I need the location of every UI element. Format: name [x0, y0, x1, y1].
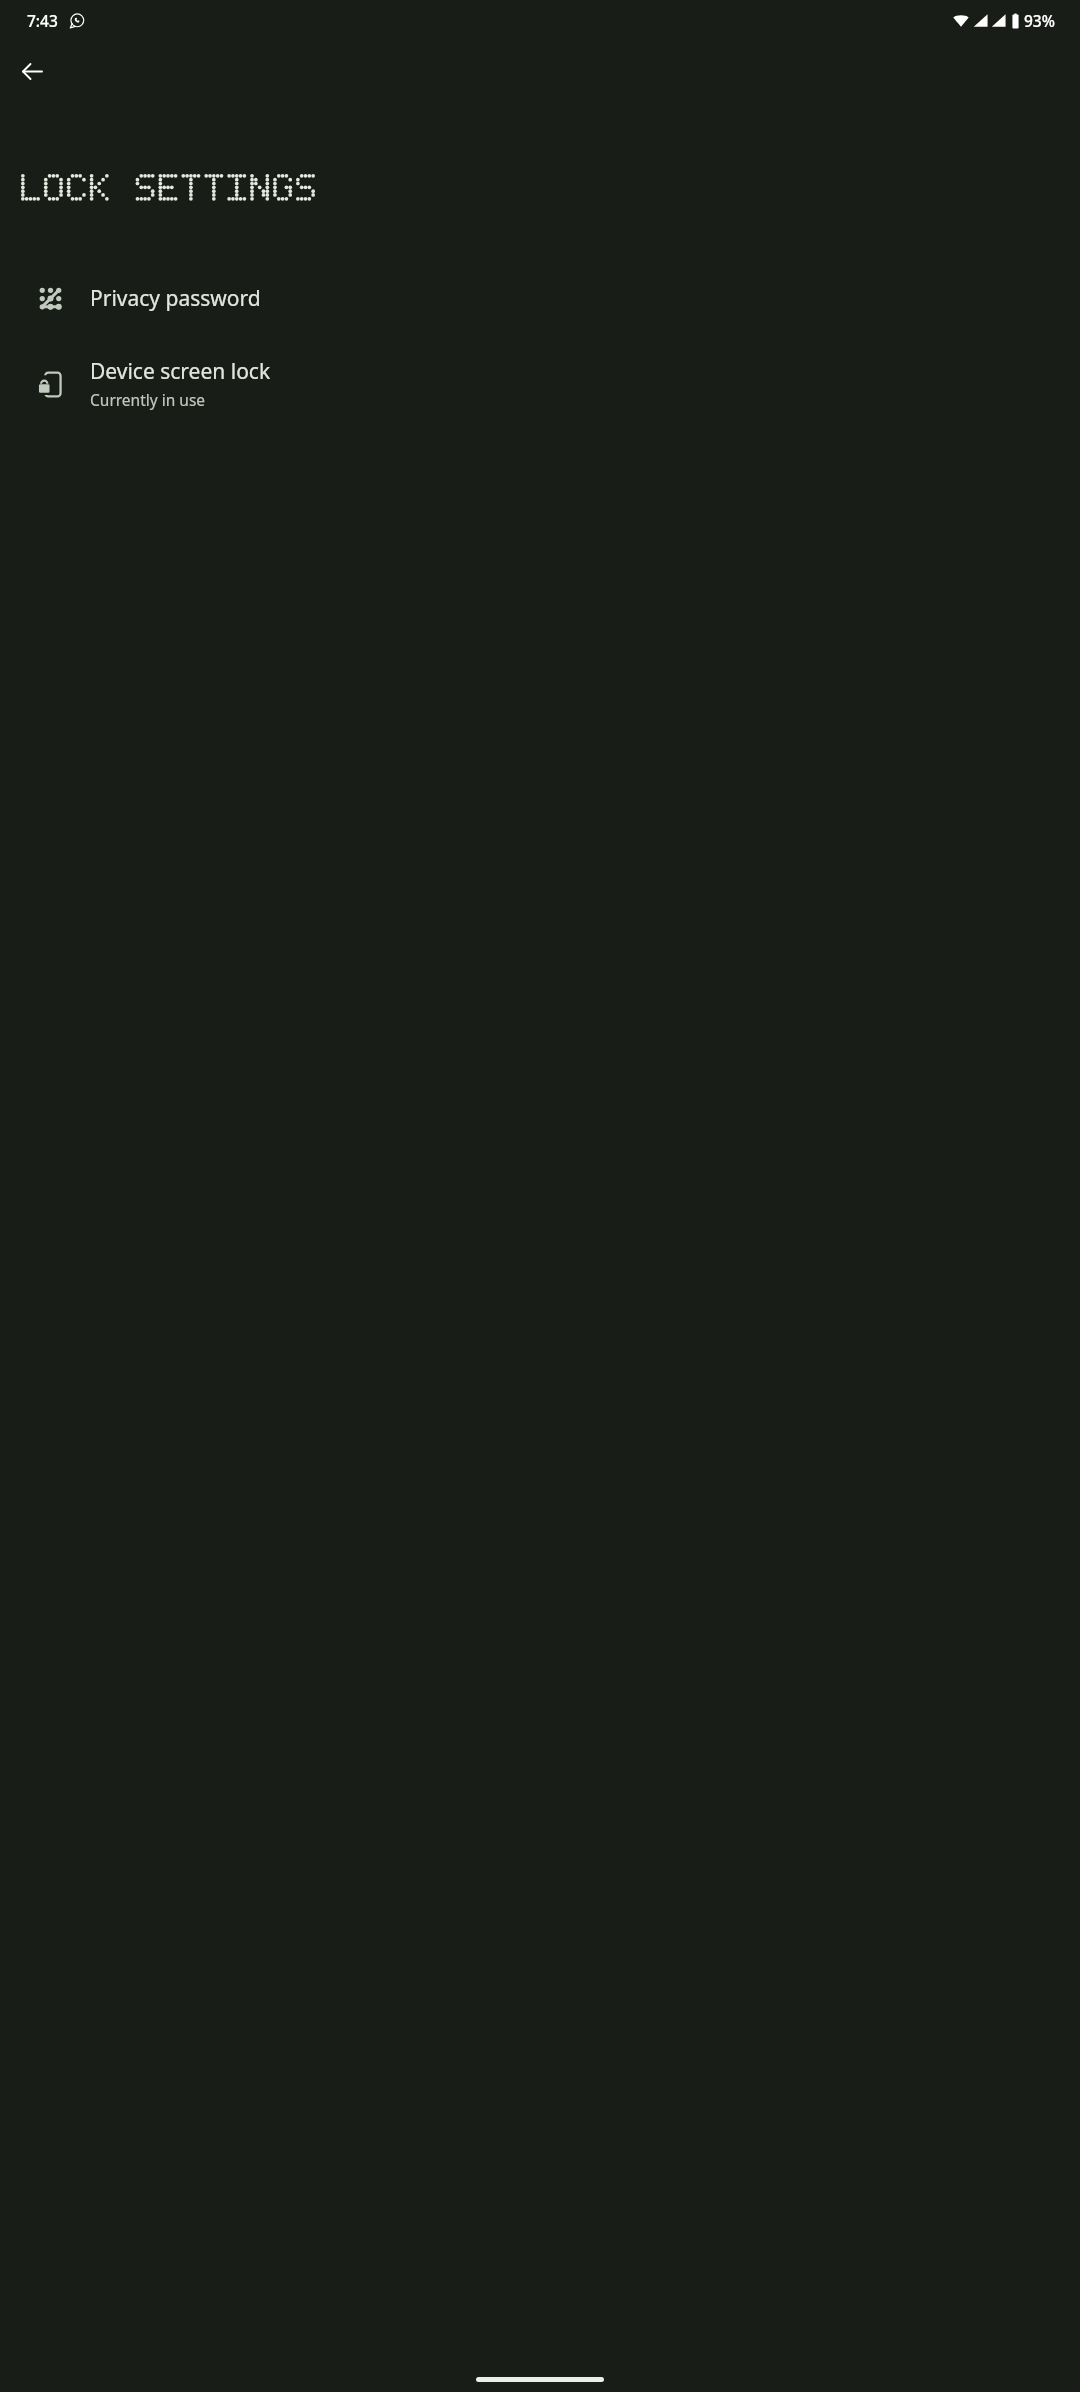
button[interactable]: Back	[8, 47, 56, 95]
button[interactable]: Privacy password	[0, 263, 1080, 333]
staticText: Device screen lock	[90, 357, 271, 386]
staticText: Currently in use	[90, 389, 206, 410]
staticText: 93%	[1024, 10, 1055, 31]
staticText: 7:43	[27, 10, 58, 31]
staticText: Privacy password	[90, 284, 261, 313]
button[interactable]: Device screen lock	[0, 345, 1080, 422]
